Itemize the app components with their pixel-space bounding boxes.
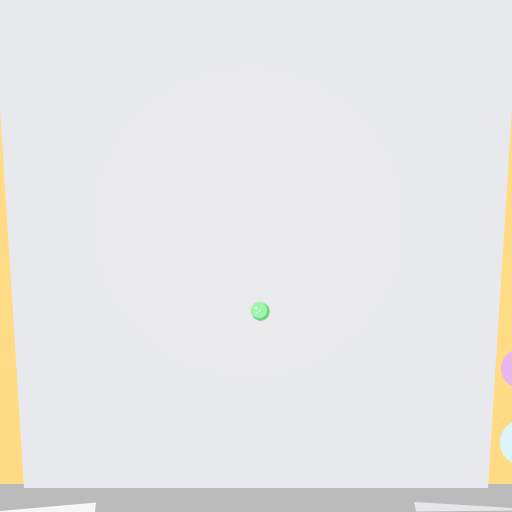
- button[interactable]: Sparkle: [0, 0, 512, 512]
